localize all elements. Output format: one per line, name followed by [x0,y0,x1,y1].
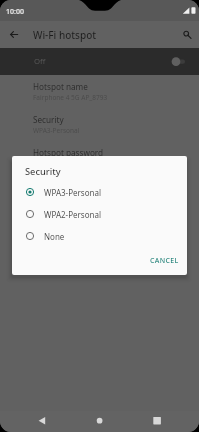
staticText: Fairphone 4 5G AP_8793 [33,93,108,102]
button[interactable]: CANCEL [140,247,187,275]
button[interactable]: None [12,225,187,247]
staticText: WPA3-Personal [44,187,101,198]
button[interactable]: Off [0,48,199,75]
button[interactable]: WPA3-Personal [12,181,187,203]
staticText: CANCEL [150,256,179,266]
button[interactable]: Back [0,411,67,432]
staticText: WPA2-Personal [44,209,101,220]
button[interactable]: WPA2-Personal [12,203,187,225]
staticText: Security [25,165,61,178]
button[interactable]: Hotspot password [0,147,199,180]
staticText: Security [33,114,64,125]
button[interactable]: Security [0,114,199,147]
button[interactable]: Hotspot name [0,81,199,114]
staticText: None [44,231,65,242]
staticText: WPA3-Personal [33,126,80,135]
button[interactable]: Recents [133,411,199,432]
staticText: Hotspot password [33,147,104,158]
staticText: Wi-Fi hotspot [33,28,97,42]
staticText: Off [34,56,46,67]
button[interactable]: Search [173,21,199,48]
button[interactable]: Back [0,21,27,48]
staticText: 10:00 [6,7,24,17]
staticText: Hotspot name [33,81,88,92]
button[interactable]: Home [67,411,133,432]
